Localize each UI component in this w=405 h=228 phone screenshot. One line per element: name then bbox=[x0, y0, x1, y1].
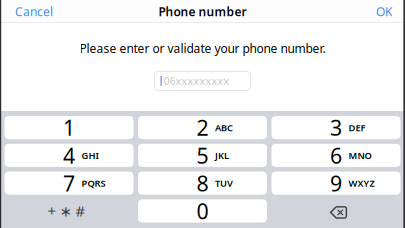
button[interactable]: 4 bbox=[4, 144, 133, 167]
button[interactable]: 0 bbox=[138, 199, 267, 222]
staticText: TUV bbox=[215, 177, 233, 189]
staticText: MNO bbox=[348, 149, 371, 162]
staticText: 0 bbox=[196, 197, 208, 225]
button[interactable]: 3 bbox=[271, 116, 400, 139]
button[interactable]: 9 bbox=[271, 172, 400, 195]
staticText: + ∗ # bbox=[47, 201, 84, 221]
staticText: Cancel bbox=[15, 3, 53, 19]
staticText: Please enter or validate your phone numb… bbox=[79, 40, 325, 56]
staticText: 4 bbox=[63, 141, 75, 169]
staticText: JKL bbox=[215, 149, 229, 162]
staticText: 06xxxxxxxxx bbox=[163, 74, 229, 88]
staticText: Phone number bbox=[158, 3, 246, 19]
staticText: 8 bbox=[196, 169, 208, 197]
button[interactable]: OK bbox=[367, 0, 405, 24]
button[interactable]: Delete bbox=[271, 199, 400, 222]
button[interactable]: Cancel bbox=[0, 0, 62, 24]
staticText: DEF bbox=[348, 121, 365, 134]
button[interactable]: 5 bbox=[138, 144, 267, 167]
staticText: PQRS bbox=[81, 177, 105, 189]
button[interactable]: 1 bbox=[4, 116, 133, 139]
button[interactable]: 6 bbox=[271, 144, 400, 167]
staticText: GHI bbox=[81, 149, 98, 162]
staticText: WXYZ bbox=[348, 177, 374, 189]
staticText: 6 bbox=[330, 141, 342, 169]
button[interactable]: + ∗ # bbox=[4, 199, 133, 222]
staticText: 7 bbox=[63, 169, 75, 197]
staticText: ABC bbox=[215, 121, 233, 134]
staticText: 3 bbox=[330, 113, 342, 142]
staticText: 2 bbox=[196, 113, 208, 142]
staticText: OK bbox=[376, 3, 392, 19]
button[interactable]: 7 bbox=[4, 172, 133, 195]
button[interactable]: 2 bbox=[138, 116, 267, 139]
staticText: 1 bbox=[63, 113, 75, 142]
staticText: 9 bbox=[330, 169, 342, 197]
button[interactable]: 8 bbox=[138, 172, 267, 195]
staticText: 5 bbox=[196, 141, 208, 169]
